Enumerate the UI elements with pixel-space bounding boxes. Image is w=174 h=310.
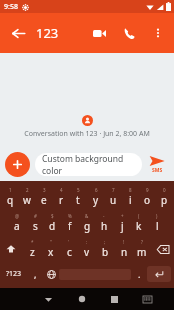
button[interactable]: Enter — [147, 266, 171, 282]
staticText: r — [59, 193, 64, 207]
button[interactable]: ) — [149, 210, 165, 236]
staticText: + — [121, 213, 124, 219]
button[interactable]: Hide keyboard — [31, 288, 65, 310]
button[interactable]: 0 — [156, 183, 172, 210]
staticText: " — [50, 239, 52, 245]
button[interactable]: * — [24, 236, 40, 262]
staticText: 5 — [77, 187, 80, 193]
staticText: o — [144, 193, 151, 207]
button[interactable]: + — [114, 210, 130, 236]
button[interactable]: 2 — [19, 183, 35, 210]
staticText: f — [68, 219, 72, 233]
button[interactable]: ! — [116, 236, 132, 262]
staticText: Custom background color — [42, 153, 135, 176]
staticText: d — [49, 219, 56, 233]
staticText: g — [84, 219, 91, 233]
button[interactable]: Backspace — [152, 236, 174, 262]
staticText: ( — [138, 213, 140, 219]
button[interactable]: 6 — [88, 183, 104, 210]
staticText: $ — [51, 213, 54, 219]
staticText: SMS — [152, 167, 163, 174]
button[interactable]: 1 — [2, 183, 18, 210]
staticText: ?123 — [6, 269, 22, 279]
button[interactable]: % — [62, 210, 78, 236]
staticText: ) — [156, 213, 158, 219]
button[interactable]: Back — [0, 15, 36, 51]
staticText: j — [121, 219, 124, 233]
staticText: % — [68, 213, 72, 219]
button[interactable]: Home — [65, 288, 98, 310]
staticText: 3 — [43, 187, 46, 193]
staticText: c — [67, 245, 72, 259]
staticText: . — [138, 268, 141, 280]
button[interactable]: ( — [131, 210, 147, 236]
button[interactable]: Change language — [43, 262, 59, 286]
button[interactable]: . — [131, 262, 147, 286]
staticText: - — [103, 213, 105, 219]
staticText: y — [93, 193, 99, 207]
staticText: x — [48, 245, 54, 259]
staticText: h — [101, 219, 108, 233]
staticText: : — [86, 239, 88, 245]
staticText: Conversation with 123 · Jun 2, 8:00 AM — [24, 129, 150, 139]
staticText: s — [33, 219, 38, 233]
staticText: 1 — [9, 187, 12, 193]
staticText: n — [121, 245, 128, 259]
staticText: ! — [123, 239, 125, 245]
button[interactable]: 9 — [139, 183, 155, 210]
button[interactable]: # — [27, 210, 43, 236]
staticText: q — [7, 193, 14, 207]
staticText: 8 — [129, 187, 132, 193]
button[interactable]: ; — [97, 236, 113, 262]
button[interactable]: Send SMS — [145, 155, 169, 174]
staticText: , — [34, 268, 37, 280]
button[interactable]: More options — [144, 19, 172, 47]
button[interactable]: ' — [61, 236, 77, 262]
button[interactable]: 7 — [105, 183, 121, 210]
button[interactable]: $ — [44, 210, 60, 236]
button[interactable]: Call — [114, 18, 144, 48]
staticText: p — [161, 193, 168, 207]
staticText: @ — [15, 213, 20, 219]
staticText: 4 — [60, 187, 63, 193]
button[interactable]: & — [79, 210, 95, 236]
staticText: v — [84, 245, 90, 259]
staticText: & — [85, 213, 89, 219]
staticText: z — [30, 245, 35, 259]
button[interactable]: ?123 — [0, 262, 27, 286]
button[interactable]: @ — [9, 210, 25, 236]
button[interactable]: Recent apps — [98, 288, 131, 310]
button[interactable]: , — [27, 262, 43, 286]
staticText: 2 — [26, 187, 29, 193]
staticText: 9 — [146, 187, 149, 193]
button[interactable]: - — [96, 210, 112, 236]
button[interactable]: ? — [134, 236, 150, 262]
staticText: l — [156, 219, 159, 233]
staticText: 6 — [95, 187, 98, 193]
staticText: a — [14, 219, 20, 233]
button[interactable]: 8 — [122, 183, 138, 210]
button[interactable]: 4 — [53, 183, 69, 210]
button[interactable]: Switch keyboard — [131, 288, 164, 310]
staticText: i — [129, 193, 132, 207]
staticText: 9:58 — [4, 2, 18, 12]
staticText: w — [23, 193, 31, 207]
button[interactable]: : — [79, 236, 95, 262]
staticText: b — [102, 245, 109, 259]
button[interactable]: Attach — [5, 152, 30, 177]
staticText: ; — [104, 239, 106, 245]
staticText: 0 — [163, 187, 166, 193]
staticText: 7 — [112, 187, 115, 193]
button[interactable]: Custom background color — [35, 153, 142, 176]
staticText: k — [136, 219, 142, 233]
staticText: m — [137, 245, 147, 259]
button[interactable]: Video call — [84, 18, 114, 48]
button[interactable]: 5 — [70, 183, 86, 210]
button[interactable]: Shift — [0, 236, 22, 262]
staticText: ' — [68, 239, 70, 245]
button[interactable]: 3 — [36, 183, 52, 210]
staticText: * — [31, 239, 34, 245]
button[interactable]: " — [43, 236, 59, 262]
staticText: 123 — [36, 24, 84, 42]
